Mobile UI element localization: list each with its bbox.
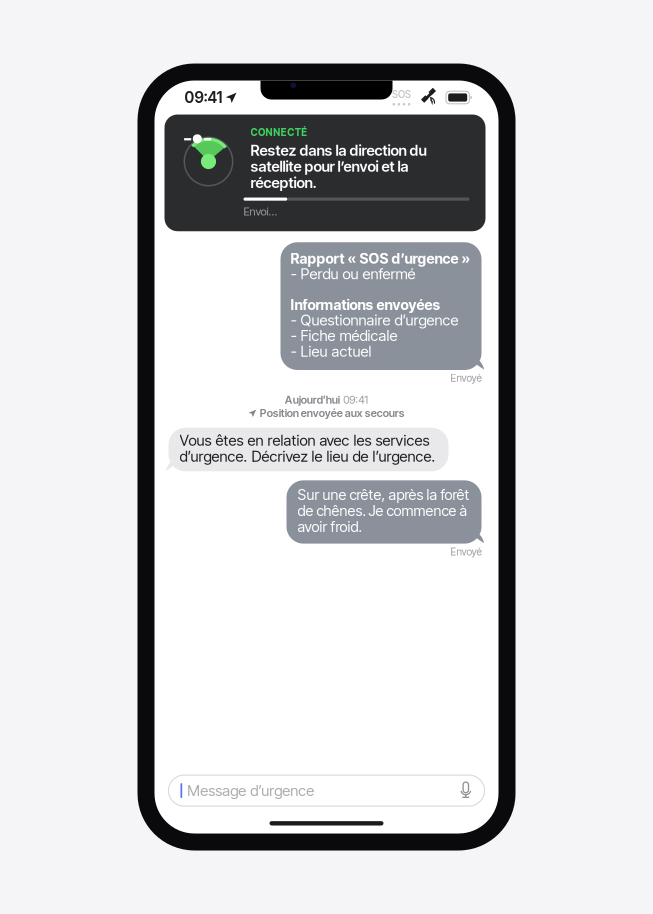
staticText: 09:41	[343, 393, 368, 406]
staticText: Envoyé	[450, 372, 481, 384]
staticText: 09:41	[184, 88, 222, 107]
staticText: Envoyé	[450, 546, 481, 558]
staticText: SOS	[392, 88, 411, 100]
staticText: Position envoyée aux secours	[260, 406, 405, 420]
staticText: Rapport « SOS d’urgence » - Perdu ou enf…	[290, 250, 470, 360]
staticText: Sur une crête, après la forêt de chênes.…	[297, 486, 469, 536]
staticText: Restez dans la direction du satellite po…	[250, 141, 426, 191]
staticText: Aujourd’hui	[285, 393, 340, 406]
staticText: Vous êtes en relation avec les services …	[179, 431, 435, 465]
staticText: CONNECTÉ	[250, 126, 307, 138]
staticText: Envoi...	[243, 205, 277, 218]
button[interactable]: Message d’urgence	[154, 775, 498, 806]
staticText: Message d’urgence	[187, 782, 314, 800]
